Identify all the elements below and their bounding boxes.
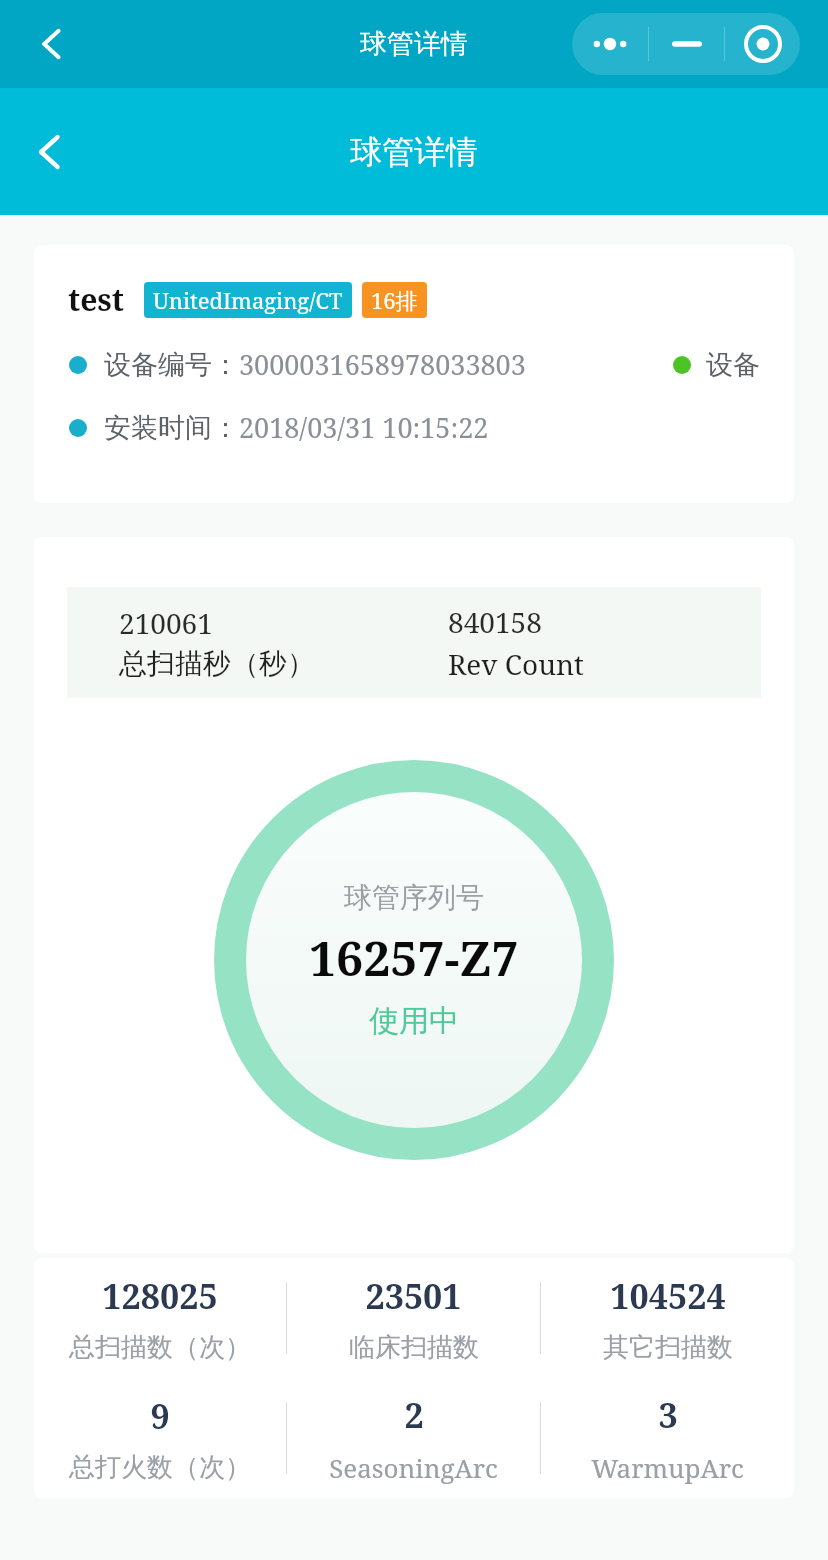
staticText: 104524 [610, 1273, 726, 1319]
staticText: 设备 [706, 348, 760, 382]
staticText: 2 [404, 1392, 424, 1438]
staticText: 3000031658978033803 [239, 346, 526, 383]
button[interactable]: UnitedImaging/CT [144, 282, 352, 318]
staticText: 球管详情 [360, 27, 468, 61]
staticText: 设备编号： [104, 348, 239, 382]
button[interactable]: 3 [541, 1378, 794, 1498]
staticText: 球管序列号 [344, 880, 484, 915]
button[interactable]: Back [20, 12, 84, 76]
staticText: 球管详情 [350, 132, 478, 172]
staticText: 总打火数（次） [69, 1451, 251, 1484]
staticText: 210061 [119, 604, 213, 642]
staticText: 840158 [448, 603, 542, 641]
button[interactable]: 104524 [541, 1258, 794, 1378]
button[interactable]: 9 [34, 1378, 286, 1498]
button[interactable]: 128025 [34, 1258, 286, 1378]
staticText: WarmupArc [591, 1450, 744, 1485]
staticText: 16排 [371, 285, 418, 315]
staticText: 使用中 [369, 1002, 459, 1040]
staticText: 23501 [365, 1273, 462, 1319]
button[interactable]: Back [14, 116, 86, 188]
button[interactable]: Close [725, 13, 800, 75]
button[interactable]: 2 [287, 1378, 540, 1498]
button[interactable]: 16排 [362, 282, 427, 318]
button[interactable]: test [34, 245, 794, 503]
staticText: Rev Count [448, 645, 584, 683]
button[interactable]: More [572, 13, 648, 75]
staticText: UnitedImaging/CT [153, 285, 343, 315]
staticText: SeasoningArc [329, 1450, 498, 1485]
staticText: 9 [150, 1393, 170, 1439]
staticText: 128025 [102, 1273, 218, 1319]
staticText: 安装时间： [104, 411, 239, 445]
staticText: 总扫描数（次） [69, 1331, 251, 1364]
staticText: 16257-Z7 [309, 925, 519, 990]
button[interactable]: 23501 [287, 1258, 540, 1378]
staticText: 3 [658, 1392, 678, 1438]
button[interactable]: Minimize [649, 13, 724, 75]
staticText: 其它扫描数 [603, 1331, 733, 1364]
staticText: test [68, 279, 124, 320]
staticText: 总扫描秒（秒） [119, 646, 315, 681]
staticText: 临床扫描数 [349, 1331, 479, 1364]
staticText: 2018/03/31 10:15:22 [239, 409, 489, 446]
